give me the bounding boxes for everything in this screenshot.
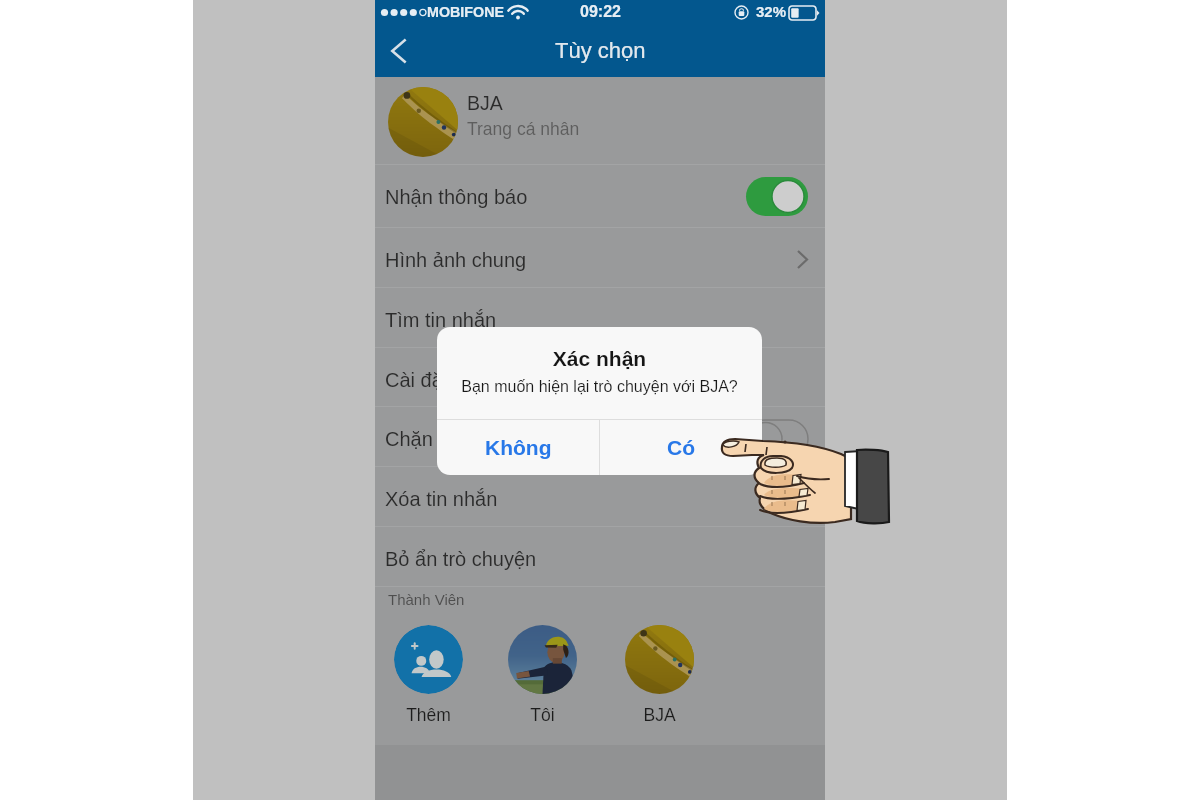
staticText: Trang cá nhân — [467, 119, 580, 139]
staticText: Tùy chọn — [555, 38, 646, 63]
staticText: BJA — [467, 92, 503, 114]
staticText: Tìm tin nhắn — [385, 309, 497, 331]
button[interactable]: Thêm — [393, 625, 463, 725]
staticText: Không — [485, 436, 552, 459]
button[interactable]: Toggle block — [746, 420, 808, 458]
staticText: Hình ảnh chung — [385, 249, 527, 271]
staticText: Có — [667, 436, 695, 459]
button[interactable]: BJA — [375, 76, 825, 164]
staticText: 09:22 — [580, 3, 621, 21]
button[interactable]: Cài đặt cá nhân — [375, 352, 825, 407]
button[interactable]: Tìm tin nhắn — [375, 292, 825, 347]
button[interactable]: BJA — [624, 625, 694, 725]
staticText: Bỏ ẩn trò chuyện — [385, 548, 537, 570]
staticText: Cài đặt cá nhân — [385, 369, 526, 391]
staticText: Xác nhận — [437, 347, 762, 370]
staticText: Xóa tin nhắn — [385, 488, 498, 510]
button[interactable]: Bỏ ẩn trò chuyện — [375, 531, 825, 586]
staticText: 32% — [756, 3, 787, 20]
button[interactable]: Có — [600, 420, 762, 475]
button[interactable]: Toggle notifications — [746, 177, 808, 216]
staticText: Bạn muốn hiện lại trò chuyện với BJA? — [437, 378, 762, 396]
staticText: Nhận thông báo — [385, 186, 528, 208]
staticText: Tôi — [530, 705, 555, 725]
button[interactable]: Không — [437, 420, 599, 475]
staticText: Thêm — [406, 705, 451, 725]
button[interactable]: Back — [375, 27, 421, 77]
button[interactable]: Hình ảnh chung — [375, 232, 825, 287]
staticText: Chặn — [385, 428, 433, 450]
button[interactable]: Xóa tin nhắn — [375, 471, 825, 526]
staticText: Thành Viên — [388, 591, 465, 608]
button[interactable]: Tôi — [507, 625, 577, 725]
staticText: BJA — [643, 705, 676, 725]
staticText: MOBIFONE — [427, 4, 505, 20]
button[interactable]: Chặn — [375, 411, 825, 466]
button[interactable]: Nhận thông báo — [375, 169, 825, 224]
